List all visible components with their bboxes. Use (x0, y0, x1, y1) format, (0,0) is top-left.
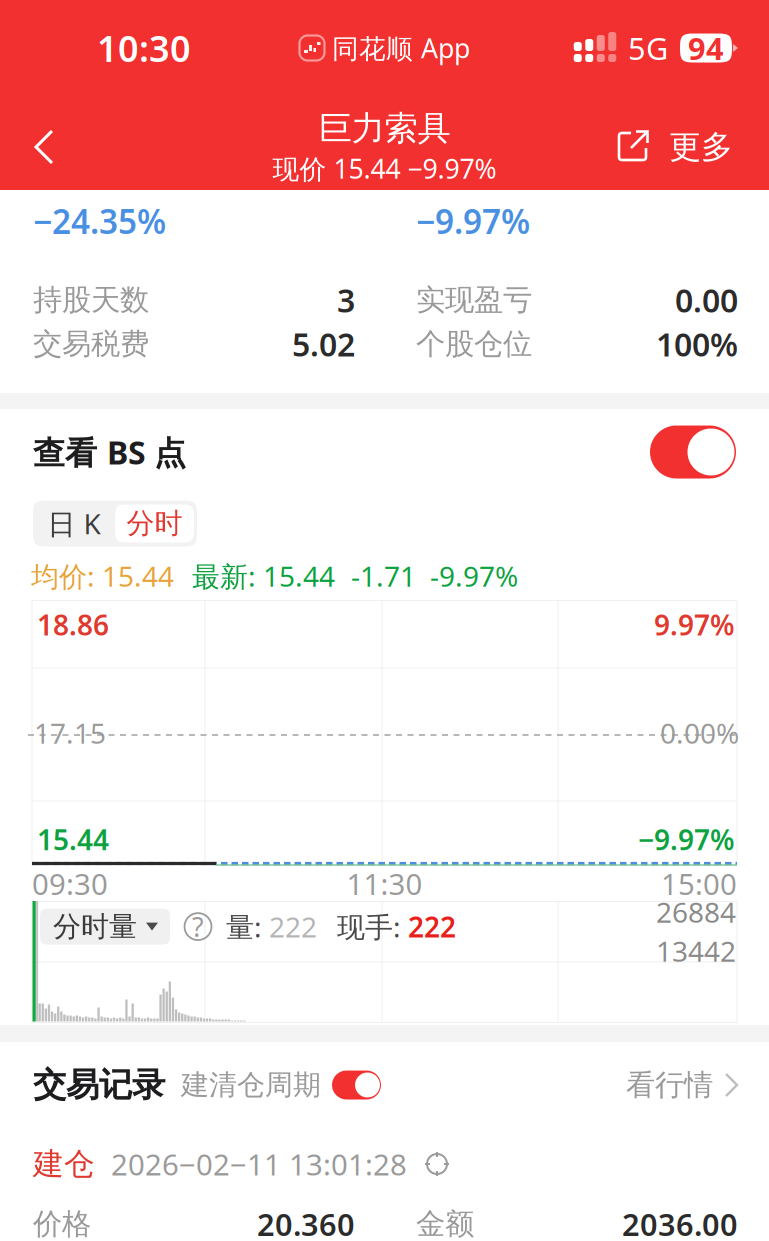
staticText: 分时 (126, 506, 182, 541)
staticText: 94 (688, 28, 724, 68)
staticText: 0.00 (675, 279, 738, 321)
staticText: 18.86 (37, 606, 109, 643)
button[interactable]: 分享 (577, 119, 663, 175)
staticText: 建清仓周期 (181, 1068, 321, 1102)
staticText: 5G (628, 28, 668, 68)
staticText: 交易税费 (33, 326, 149, 362)
button[interactable]: 返回 (8, 109, 84, 185)
button[interactable]: 分时量 (40, 909, 170, 945)
staticText: 巨力索具 (318, 108, 450, 149)
staticText: 均价: 15.44 (31, 557, 174, 595)
staticText: 查看 BS 点 (33, 431, 186, 473)
staticText: 3 (337, 279, 355, 321)
staticText: 09:30 (32, 864, 108, 903)
button[interactable]: 看行情 (626, 1067, 739, 1103)
staticText: −24.35% (33, 199, 166, 243)
staticText: 持股天数 (33, 282, 149, 318)
button[interactable]: 更多 (663, 119, 737, 175)
staticText: −9.97% (638, 821, 735, 858)
button[interactable]: 日 K (33, 500, 115, 546)
staticText: 分时量 (53, 909, 137, 944)
staticText: 交易记录 (33, 1064, 165, 1105)
staticText: 15.44 (37, 821, 109, 858)
staticText: 222 (269, 908, 317, 945)
staticText: 最新: 15.44 (192, 557, 335, 595)
staticText: 金额 (416, 1206, 474, 1241)
staticText: -9.97% (430, 557, 518, 595)
staticText: 26884 (656, 893, 736, 931)
staticText: -1.71 (351, 557, 416, 595)
staticText: 5.02 (292, 323, 355, 365)
staticText: 100% (656, 323, 738, 365)
staticText: 10:30 (97, 24, 191, 72)
staticText: 222 (408, 908, 456, 945)
staticText: 2026−02−11 13:01:28 (111, 1144, 407, 1183)
button[interactable]: 建清仓周期开关 (332, 1070, 381, 1099)
staticText: 11:30 (346, 864, 422, 903)
staticText: 0.00% (660, 714, 739, 752)
staticText: 13442 (656, 932, 736, 970)
staticText: 17.15 (34, 714, 106, 752)
staticText: 看行情 (626, 1067, 713, 1103)
staticText: 现手: (337, 908, 401, 945)
staticText: 现价 15.44 −9.97% (272, 151, 496, 186)
button[interactable]: 查看BS点开关 (650, 425, 736, 478)
staticText: 2036.00 (622, 1204, 738, 1241)
staticText: 同花顺 App (332, 30, 470, 66)
staticText: 日 K (47, 505, 100, 542)
staticText: 20.360 (257, 1204, 355, 1241)
staticText: ? (192, 909, 204, 944)
staticText: 更多 (669, 127, 733, 167)
staticText: 9.97% (654, 606, 735, 643)
staticText: 15:00 (661, 864, 737, 903)
staticText: 量: (226, 908, 262, 945)
staticText: 实现盈亏 (416, 282, 532, 318)
staticText: 价格 (33, 1206, 91, 1241)
staticText: 建仓 (33, 1145, 95, 1183)
button[interactable]: 分时 (115, 504, 194, 542)
staticText: −9.97% (416, 199, 530, 243)
staticText: 个股仓位 (416, 326, 532, 362)
